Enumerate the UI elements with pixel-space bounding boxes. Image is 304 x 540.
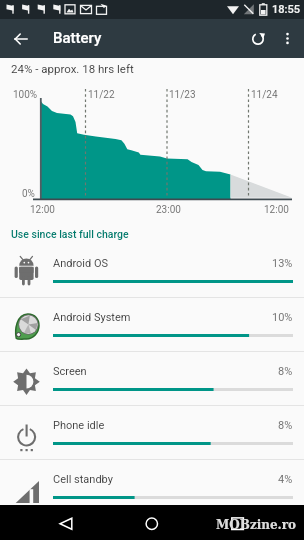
button[interactable]: Refresh [238,19,277,58]
staticText: Use since last full charge [11,228,129,240]
staticText: 24% - approx. 18 hrs left [11,62,134,75]
button[interactable]: Back [46,505,86,540]
staticText: 18:55 [272,3,300,16]
staticText: 4% [278,473,293,486]
staticText: 0% [22,188,35,200]
staticText: 13% [272,257,293,270]
staticText: MOBzine.ro [216,518,297,532]
button[interactable]: Phone idle [0,406,304,460]
button[interactable]: Home [132,505,172,540]
staticText: 100% [13,89,38,101]
staticText: Android OS [53,257,109,270]
staticText: 12:00 [264,204,289,216]
staticText: Screen [53,365,87,378]
button[interactable]: Screen [0,352,304,406]
button[interactable]: Use since last full charge [0,224,304,244]
staticText: Phone idle [53,419,105,432]
button[interactable]: Android OS [0,244,304,298]
staticText: 11/23 [169,89,196,101]
staticText: 8% [278,365,293,378]
button[interactable]: Android System [0,298,304,352]
staticText: 8% [278,419,293,432]
button[interactable]: More options [268,19,304,58]
staticText: 12:00 [30,204,55,216]
button[interactable]: Recent apps [218,505,258,540]
staticText: 11/22 [88,89,115,101]
button[interactable]: Navigate up [1,19,40,58]
staticText: Battery [53,29,102,47]
staticText: Cell standby [53,473,113,486]
staticText: 23:00 [156,204,181,216]
staticText: Android System [53,311,131,324]
staticText: 11/24 [251,89,278,101]
button[interactable]: Cell standby [0,460,304,514]
staticText: 10% [272,311,293,324]
